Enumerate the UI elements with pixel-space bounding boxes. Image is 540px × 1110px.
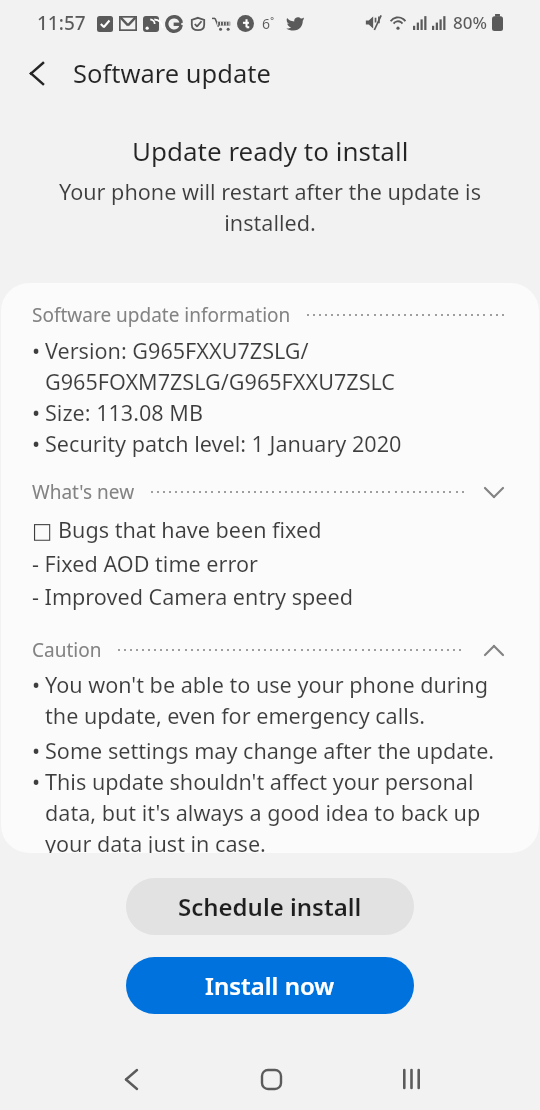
staticText: • <box>32 767 45 796</box>
staticText: Caution <box>32 637 102 663</box>
staticText: • <box>32 398 45 427</box>
button[interactable]: Back <box>62 1048 201 1110</box>
staticText: Version: G965FXXU7ZSLG/ G965FOXM7ZSLG/G9… <box>45 336 396 397</box>
staticText: - Improved Camera entry speed <box>32 582 353 611</box>
staticText: • <box>32 336 45 365</box>
staticText: - Fixed AOD time error <box>32 549 258 578</box>
staticText: Security patch level: 1 January 2020 <box>45 429 402 458</box>
staticText: • <box>32 429 45 458</box>
button[interactable]: Schedule install <box>126 878 414 935</box>
staticText: Software update <box>73 56 271 91</box>
staticText: Update ready to install <box>132 133 409 168</box>
staticText: 80% <box>453 11 487 34</box>
button[interactable]: Collapse section <box>479 636 509 664</box>
button[interactable]: Recent apps <box>341 1048 481 1110</box>
button[interactable]: Expand section <box>479 478 509 506</box>
staticText: You won't be able to use your phone duri… <box>45 670 505 731</box>
staticText: Software update information <box>32 302 291 328</box>
button[interactable]: Install now <box>126 957 414 1014</box>
staticText: This update shouldn't affect your person… <box>45 767 505 853</box>
staticText: Some settings may change after the updat… <box>45 736 495 765</box>
staticText: □ Bugs that have been fixed <box>32 515 322 544</box>
staticText: Your phone will restart after the update… <box>56 177 484 237</box>
button[interactable]: Home <box>201 1048 341 1110</box>
staticText: 6˚ <box>262 14 275 33</box>
button[interactable]: Back <box>9 45 65 101</box>
staticText: 11:57 <box>37 10 86 36</box>
staticText: Install now <box>205 969 335 1002</box>
staticText: • <box>32 736 45 765</box>
staticText: Schedule install <box>178 890 362 923</box>
staticText: Size: 113.08 MB <box>45 398 203 427</box>
staticText: • <box>32 670 45 699</box>
staticText: What's new <box>32 479 135 505</box>
